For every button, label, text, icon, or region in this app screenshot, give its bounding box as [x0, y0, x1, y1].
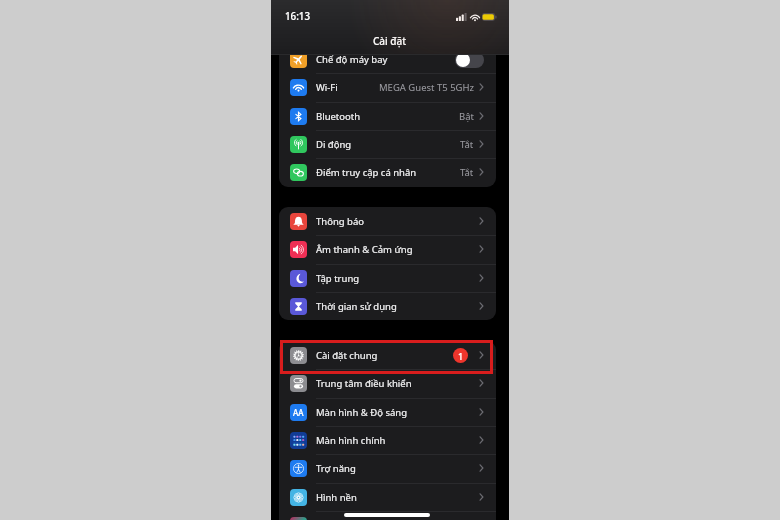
other: Airplane mode — [290, 51, 307, 68]
staticText: Âm thanh & Cảm ứng — [316, 243, 413, 256]
staticText: Di động — [316, 138, 352, 151]
staticText: Bật — [459, 110, 474, 123]
staticText: Màn hình & Độ sáng — [316, 406, 407, 419]
staticText: Điểm truy cập cá nhân — [316, 166, 417, 179]
button[interactable]: Display and brightness — [279, 398, 496, 426]
other: Bluetooth — [290, 108, 307, 125]
other: Focus — [290, 270, 307, 287]
other: Display and brightness — [290, 404, 307, 421]
button[interactable]: Wi-Fi — [279, 73, 496, 101]
staticText: Màn hình chính — [316, 434, 386, 447]
other: General — [290, 347, 307, 364]
other: Personal hotspot — [290, 164, 307, 181]
button[interactable]: Control center — [279, 369, 496, 397]
staticText: Hình nền — [316, 491, 357, 504]
other: Sounds and haptics — [290, 241, 307, 258]
staticText: Trợ năng — [316, 462, 356, 475]
button[interactable]: Cellular — [279, 130, 496, 158]
staticText: Tập trung — [316, 272, 360, 285]
other: Wallpaper — [290, 489, 307, 506]
button[interactable]: Siri and search — [279, 511, 496, 520]
staticText: Cài đặt — [373, 34, 407, 48]
button[interactable]: Bluetooth — [279, 102, 496, 130]
button[interactable]: Home screen — [279, 426, 496, 454]
button[interactable]: Airplane mode — [279, 45, 496, 73]
staticText: Chế độ máy bay — [316, 53, 388, 66]
other: Wi-Fi — [290, 79, 307, 96]
staticText: 16:13 — [285, 10, 311, 23]
button[interactable]: Personal hotspot — [279, 158, 496, 186]
staticText: 1 — [458, 350, 464, 362]
other: Home screen — [290, 432, 307, 449]
button[interactable]: Wallpaper — [279, 483, 496, 511]
staticText: MEGA Guest T5 5GHz — [379, 81, 474, 94]
staticText: Bluetooth — [316, 110, 361, 123]
button[interactable]: General — [279, 341, 496, 369]
staticText: AA — [293, 407, 304, 418]
other: Screen time — [290, 298, 307, 315]
staticText: Tắt — [460, 166, 474, 179]
staticText: Thời gian sử dụng — [316, 300, 397, 313]
other: Cellular — [290, 136, 307, 153]
button[interactable]: Accessibility — [279, 454, 496, 482]
staticText: Cài đặt chung — [316, 349, 378, 362]
staticText: Thông báo — [316, 215, 365, 228]
staticText: Wi-Fi — [316, 81, 338, 94]
staticText: Tắt — [460, 138, 474, 151]
button[interactable]: Focus — [279, 264, 496, 292]
button[interactable]: Screen time — [279, 292, 496, 320]
staticText: Trung tâm điều khiển — [316, 377, 412, 390]
button[interactable]: Notifications — [279, 207, 496, 235]
other: Notifications — [290, 213, 307, 230]
other: Control center — [290, 375, 307, 392]
other: Siri and search — [290, 517, 307, 520]
other: Accessibility — [290, 460, 307, 477]
button[interactable]: Sounds and haptics — [279, 235, 496, 263]
